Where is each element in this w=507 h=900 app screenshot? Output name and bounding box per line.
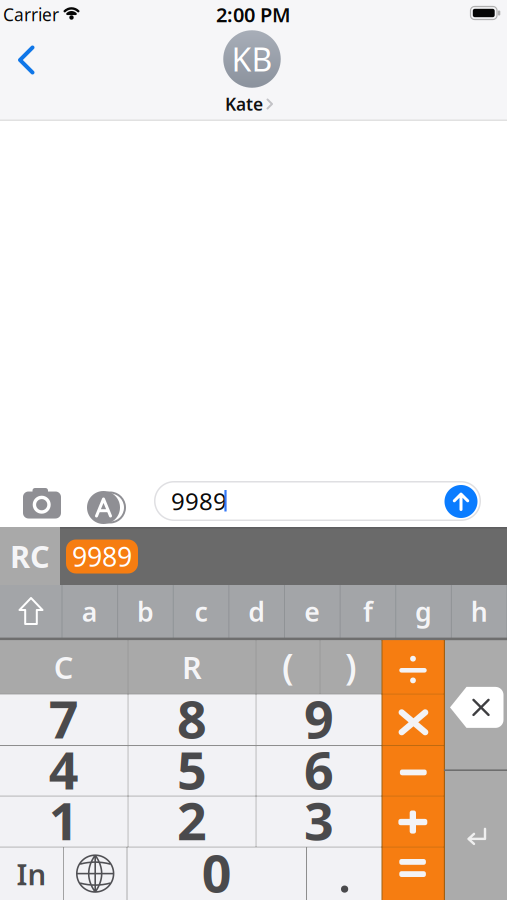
- button[interactable]: ): [320, 640, 381, 693]
- button[interactable]: h: [451, 585, 507, 638]
- button[interactable]: a: [62, 585, 118, 638]
- staticText: KB: [231, 38, 272, 80]
- button[interactable]: Decimal point: [307, 848, 381, 900]
- staticText: C: [54, 647, 74, 687]
- button[interactable]: Message field: [154, 481, 481, 521]
- button[interactable]: 9: [256, 695, 381, 745]
- button[interactable]: iMessage apps: [80, 489, 126, 525]
- button[interactable]: R: [128, 640, 255, 693]
- staticText: h: [471, 594, 488, 629]
- button[interactable]: 0: [128, 848, 306, 900]
- staticText: 0: [202, 838, 232, 900]
- button[interactable]: C: [0, 640, 127, 693]
- staticText: g: [415, 594, 432, 629]
- staticText: Carrier: [3, 3, 59, 26]
- staticText: 4: [49, 735, 79, 804]
- button[interactable]: Next keyboard: [64, 848, 126, 900]
- staticText: 9: [304, 684, 334, 753]
- button[interactable]: 7: [0, 695, 127, 745]
- staticText: 8: [177, 684, 207, 753]
- button[interactable]: 1: [0, 797, 127, 846]
- button[interactable]: 4: [0, 746, 127, 795]
- staticText: 2: [177, 785, 207, 855]
- staticText: RC: [10, 536, 50, 576]
- staticText: 2:00 PM: [216, 1, 291, 28]
- button[interactable]: Shift: [0, 585, 62, 638]
- staticText: 7: [49, 684, 79, 753]
- staticText: R: [182, 647, 202, 687]
- staticText: 9989: [171, 485, 227, 517]
- button[interactable]: Back: [13, 33, 41, 87]
- button[interactable]: Multiply: [383, 695, 444, 745]
- staticText: d: [248, 594, 265, 629]
- button[interactable]: Subtract: [383, 746, 444, 795]
- button[interactable]: 8: [128, 695, 255, 745]
- staticText: ): [345, 642, 357, 690]
- staticText: Kate: [225, 92, 263, 115]
- button[interactable]: Return: [444, 771, 507, 900]
- staticText: c: [195, 594, 208, 629]
- staticText: f: [363, 594, 373, 629]
- button[interactable]: f: [340, 585, 396, 638]
- button[interactable]: g: [396, 585, 451, 638]
- button[interactable]: Divide: [383, 640, 444, 693]
- button[interactable]: c: [173, 585, 229, 638]
- button[interactable]: 9989: [66, 539, 138, 573]
- button[interactable]: 3: [256, 797, 381, 846]
- button[interactable]: b: [118, 585, 173, 638]
- button[interactable]: Delete: [444, 640, 507, 769]
- button[interactable]: (: [256, 640, 319, 693]
- staticText: (: [282, 642, 294, 690]
- button[interactable]: Kate: [223, 30, 281, 88]
- button[interactable]: e: [284, 585, 340, 638]
- button[interactable]: RC: [0, 527, 60, 585]
- button[interactable]: Camera: [21, 487, 63, 521]
- button[interactable]: 5: [128, 746, 255, 795]
- button[interactable]: Kate, details: [228, 93, 276, 115]
- staticText: In: [16, 854, 46, 893]
- button[interactable]: Send: [444, 485, 477, 518]
- staticText: 6: [304, 735, 334, 804]
- staticText: 3: [304, 785, 334, 855]
- button[interactable]: 2: [128, 797, 255, 846]
- button[interactable]: d: [229, 585, 284, 638]
- staticText: e: [304, 594, 320, 629]
- staticText: b: [137, 594, 154, 629]
- button[interactable]: Equals: [383, 848, 444, 900]
- button[interactable]: 6: [256, 746, 381, 795]
- staticText: 9989: [72, 539, 132, 574]
- staticText: a: [82, 594, 98, 629]
- button[interactable]: Add: [383, 797, 444, 846]
- staticText: 1: [49, 785, 79, 855]
- button[interactable]: In: [0, 848, 63, 900]
- staticText: 5: [177, 735, 207, 804]
